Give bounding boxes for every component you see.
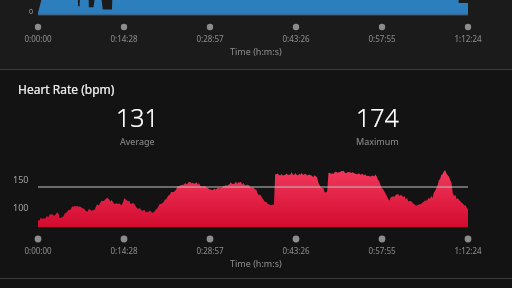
staticText: 131: [116, 100, 159, 134]
staticText: 100: [13, 201, 29, 213]
staticText: Heart Rate (bpm): [18, 81, 115, 97]
staticText: 0:14:28: [100, 245, 148, 256]
staticText: 0:00:00: [14, 33, 62, 44]
staticText: 0: [29, 7, 34, 17]
staticText: 1:12:24: [444, 33, 492, 44]
button[interactable]: 0: [0, 0, 512, 69]
staticText: 1:12:24: [444, 245, 492, 256]
staticText: 0:57:55: [358, 245, 406, 256]
staticText: 0:00:00: [14, 245, 62, 256]
staticText: Maximum: [356, 135, 399, 147]
staticText: Time (h:m:s): [230, 257, 282, 269]
staticText: 0:28:57: [186, 245, 234, 256]
staticText: 0:14:28: [100, 33, 148, 44]
staticText: 150: [13, 173, 29, 185]
staticText: Time (h:m:s): [230, 45, 282, 57]
button[interactable]: Heart Rate (bpm): [0, 70, 512, 278]
staticText: 0:43:26: [272, 245, 320, 256]
staticText: 174: [356, 100, 399, 134]
staticText: Average: [120, 135, 155, 147]
staticText: 0:57:55: [358, 33, 406, 44]
staticText: 0:28:57: [186, 33, 234, 44]
staticText: 0:43:26: [272, 33, 320, 44]
